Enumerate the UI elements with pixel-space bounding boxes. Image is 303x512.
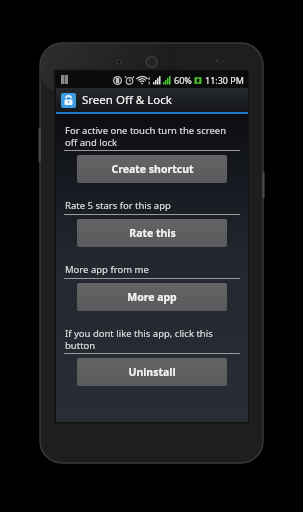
staticText: 11:30 PM: [205, 74, 244, 86]
button[interactable]: Uninstall: [77, 358, 227, 386]
button[interactable]: Create shortcut: [77, 155, 227, 183]
staticText: Rate this: [129, 226, 176, 240]
staticText: Create shortcut: [111, 162, 194, 176]
button[interactable]: Rate this: [77, 219, 227, 247]
staticText: If you dont like this app, click this bu…: [65, 327, 239, 351]
button[interactable]: More app: [77, 283, 227, 311]
staticText: Sreen Off & Lock: [82, 92, 172, 108]
staticText: 60%: [174, 74, 192, 86]
staticText: Rate 5 stars for this app: [65, 199, 239, 212]
staticText: Uninstall: [128, 365, 176, 379]
staticText: More app: [127, 290, 177, 304]
staticText: For active one touch turn the screen off…: [65, 124, 239, 148]
staticText: More app from me: [65, 263, 239, 276]
